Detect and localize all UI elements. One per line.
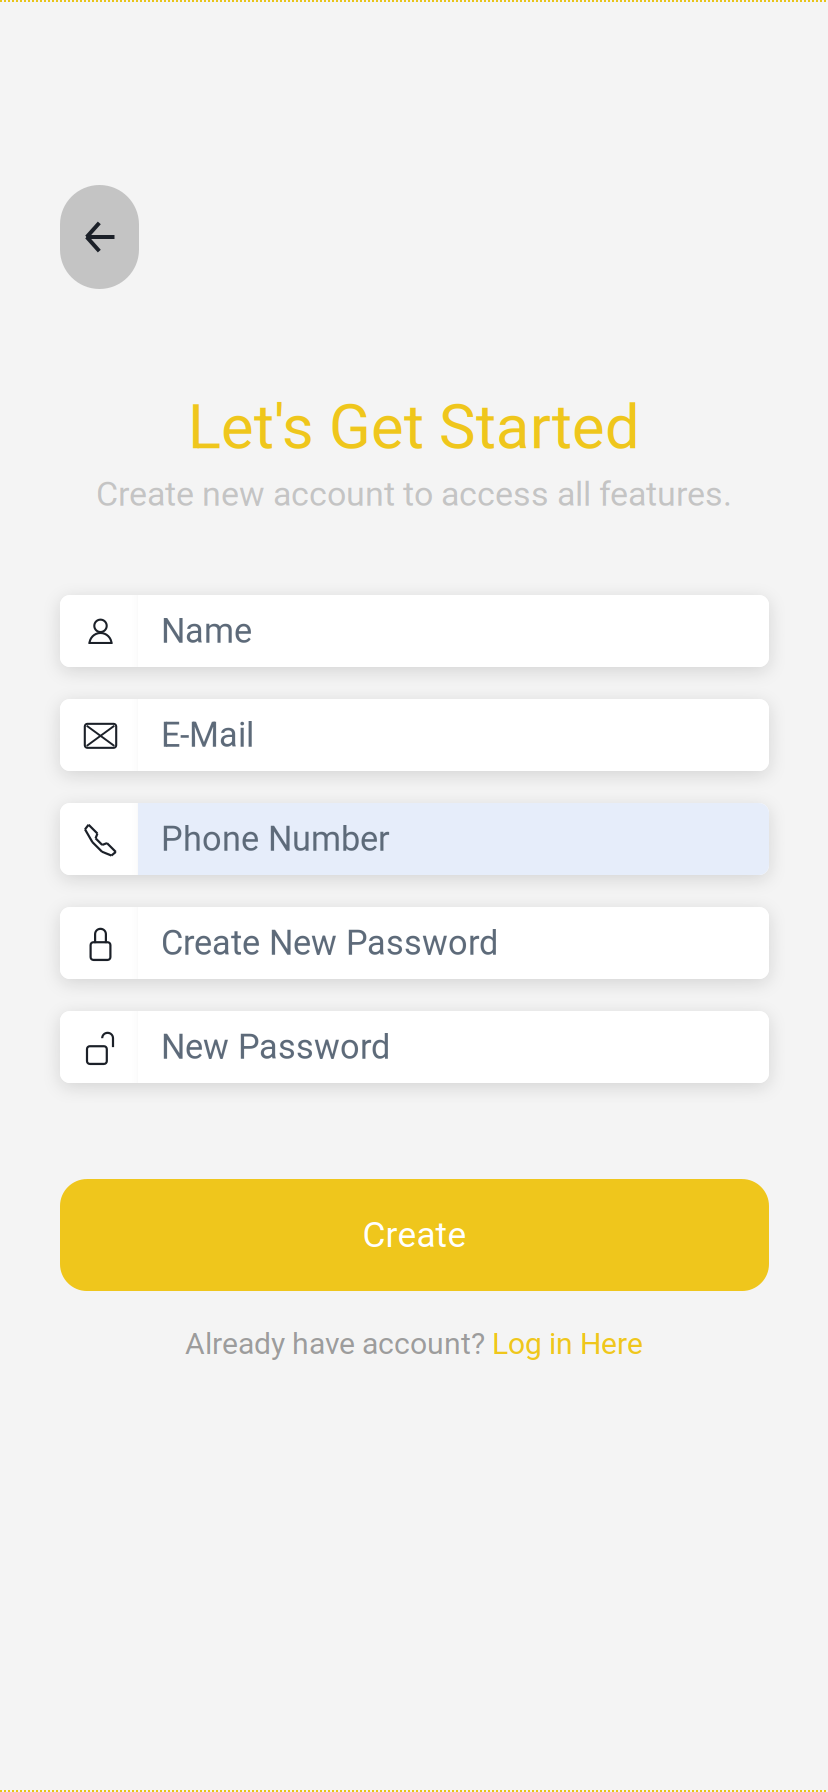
staticText: Phone Number <box>161 819 390 859</box>
staticText: E-Mail <box>161 715 254 755</box>
button[interactable]: Back <box>60 185 139 289</box>
staticText: Already have account? <box>185 1326 492 1361</box>
button[interactable]: E-Mail <box>60 699 769 771</box>
button[interactable]: Phone Number <box>60 803 769 875</box>
button[interactable]: Create New Password <box>60 907 769 979</box>
staticText: Let's Get Started <box>188 391 640 463</box>
button[interactable]: Log in Here <box>492 1326 643 1361</box>
staticText: Name <box>161 611 252 651</box>
staticText: Create new account to access all feature… <box>96 474 732 514</box>
button[interactable]: New Password <box>60 1011 769 1083</box>
staticText: New Password <box>161 1027 390 1067</box>
button[interactable]: Name <box>60 595 769 667</box>
button[interactable]: Create <box>60 1179 769 1291</box>
staticText: Create <box>362 1214 466 1256</box>
staticText: Log in Here <box>492 1326 643 1361</box>
staticText: Create New Password <box>161 923 498 963</box>
